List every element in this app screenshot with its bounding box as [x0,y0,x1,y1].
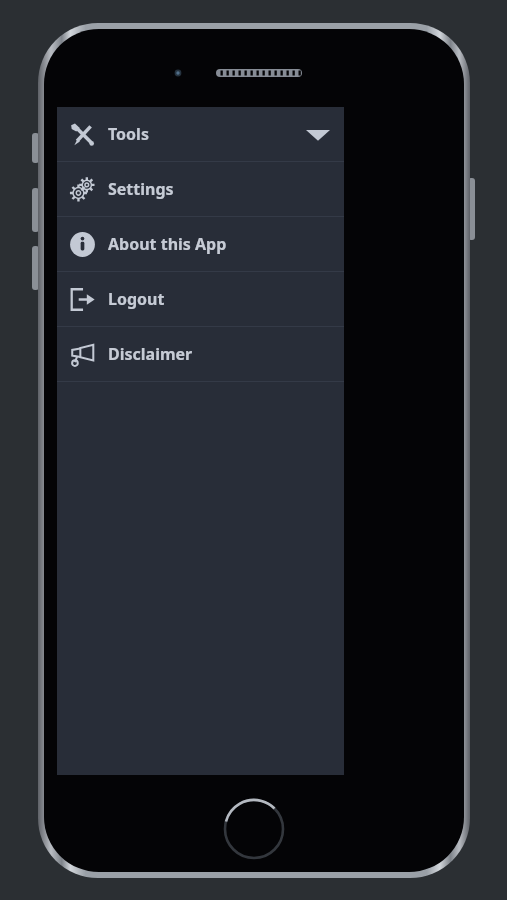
staticText: Tools [108,123,149,145]
staticText: Settings [108,178,174,200]
button[interactable]: Logout [57,272,344,326]
button[interactable]: Expand Tools [298,114,338,154]
staticText: About this App [108,233,227,255]
staticText: Logout [108,288,165,310]
button[interactable]: About this App [57,217,344,271]
button[interactable]: Disclaimer [57,327,344,381]
staticText: Disclaimer [108,343,193,365]
button[interactable]: Tools [57,107,344,161]
button[interactable]: Settings [57,162,344,216]
